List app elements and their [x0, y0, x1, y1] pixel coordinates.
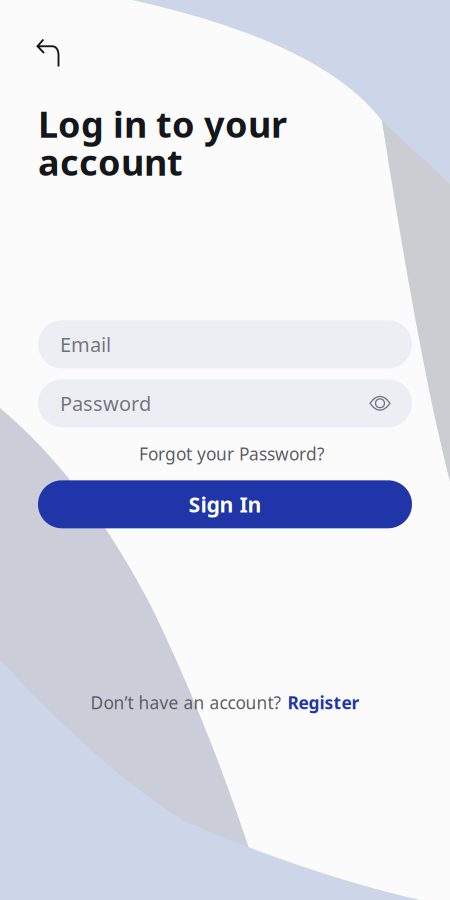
staticText: Email [60, 331, 111, 358]
staticText: Password [60, 390, 151, 417]
staticText: Don’t have an account? [90, 691, 281, 714]
staticText: Log in to your [38, 100, 287, 148]
staticText: Sign In [188, 490, 261, 518]
staticText: Forgot your Password? [139, 442, 325, 465]
button[interactable]: Forgot your Password? [139, 436, 325, 471]
staticText: Register [287, 691, 359, 714]
button[interactable]: Back [26, 31, 70, 75]
button[interactable]: Show password [365, 388, 395, 418]
button[interactable]: Register [287, 691, 359, 714]
button[interactable]: Sign In [38, 480, 412, 528]
staticText: account [38, 138, 183, 186]
